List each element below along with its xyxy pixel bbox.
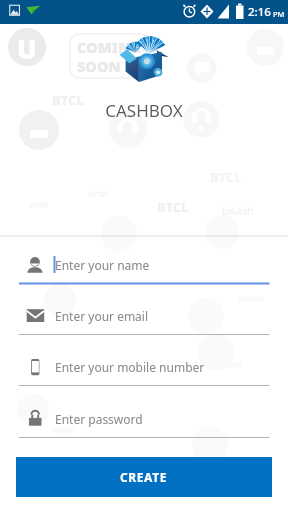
staticText: CREATE (120, 469, 168, 485)
staticText: U (17, 31, 37, 66)
staticText: airtel (88, 188, 108, 199)
staticText: COMING (77, 37, 141, 57)
button[interactable]: Enter your name (0, 252, 288, 290)
button[interactable]: Enter password (0, 406, 288, 444)
staticText: bKash (222, 203, 254, 218)
staticText: BTCL (210, 168, 242, 186)
staticText: Enter your mobile number (55, 359, 205, 375)
staticText: SOON (77, 56, 121, 76)
staticText: CASHBOX (0, 99, 288, 122)
button[interactable]: CREATE (16, 457, 272, 497)
button[interactable]: Enter your mobile number (0, 354, 288, 392)
staticText: PM (273, 9, 285, 19)
staticText: airtel (29, 199, 49, 210)
staticText: Enter your email (55, 308, 149, 324)
staticText: BTCL (52, 91, 84, 109)
staticText: Enter password (55, 411, 143, 427)
staticText: Enter your name (55, 257, 150, 273)
button[interactable]: Enter your email (0, 303, 288, 341)
staticText: 2:16 (248, 4, 271, 20)
staticText: BTCL (157, 198, 189, 216)
